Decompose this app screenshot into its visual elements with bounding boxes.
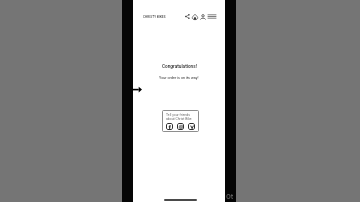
button[interactable]: Share [185,14,190,19]
staticText: Tell your friends about Christ Bike [166,113,192,121]
staticText: Congratulations! [162,64,197,70]
staticText: CHRISTY BIKES [143,15,166,18]
button[interactable]: Instagram [177,123,184,130]
staticText: Your order is on its way! [159,76,199,80]
button[interactable]: Account [200,14,206,20]
staticText: Ot [226,193,234,201]
button[interactable]: Home [192,14,198,20]
button[interactable]: Menu [208,14,216,19]
button[interactable]: Facebook [166,123,173,130]
button[interactable]: Twitter [188,123,195,130]
